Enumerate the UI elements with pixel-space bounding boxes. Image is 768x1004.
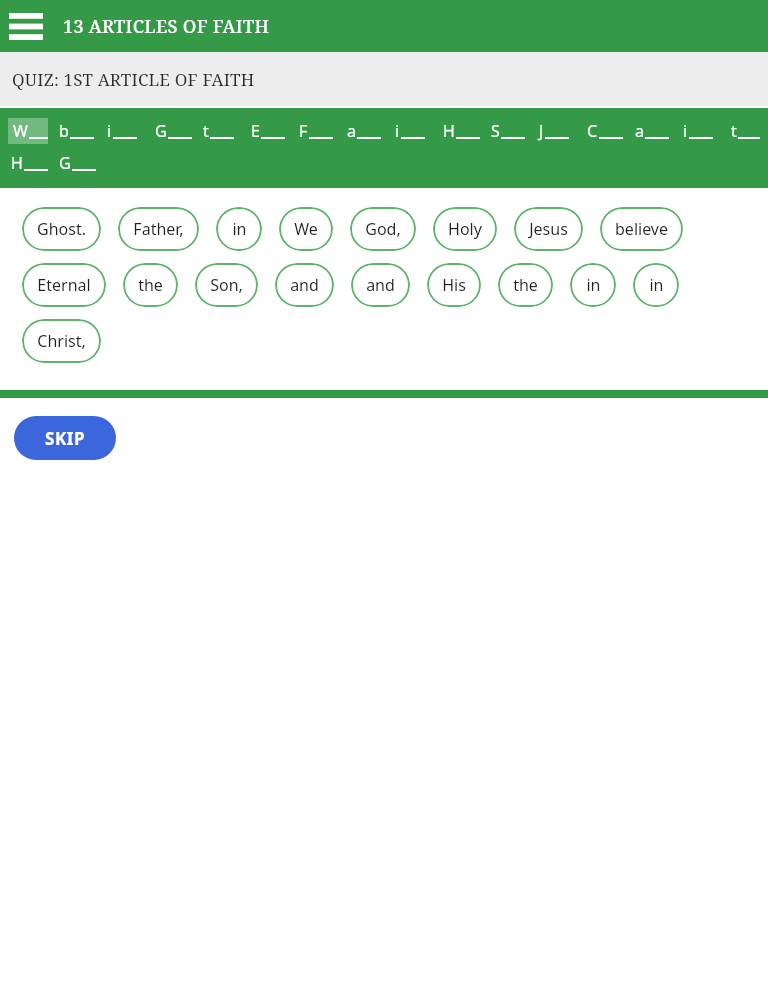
staticText: C xyxy=(587,120,598,142)
staticText: E xyxy=(251,120,260,142)
button[interactable]: i xyxy=(680,118,720,144)
staticText: Christ, xyxy=(37,330,86,352)
button[interactable]: E xyxy=(248,118,288,144)
staticText: H xyxy=(11,152,23,174)
button[interactable]: Father, xyxy=(118,207,199,251)
button[interactable]: the xyxy=(498,263,553,307)
button[interactable]: F xyxy=(296,118,336,144)
button[interactable]: We xyxy=(279,207,333,251)
button[interactable]: His xyxy=(427,263,481,307)
button[interactable]: J xyxy=(536,118,576,144)
staticText: J xyxy=(539,120,544,142)
staticText: H xyxy=(443,120,455,142)
button[interactable]: in xyxy=(633,263,679,307)
staticText: Holy xyxy=(448,218,482,240)
staticText: Jesus xyxy=(529,218,568,240)
staticText: G xyxy=(155,120,167,142)
button[interactable]: C xyxy=(584,118,624,144)
staticText: t xyxy=(203,120,209,142)
staticText: We xyxy=(294,218,318,240)
button[interactable]: i xyxy=(392,118,432,144)
staticText: Ghost. xyxy=(37,218,86,240)
button[interactable]: H xyxy=(440,118,480,144)
button[interactable]: Jesus xyxy=(514,207,583,251)
staticText: G xyxy=(59,152,71,174)
button[interactable]: SKIP xyxy=(14,416,116,460)
staticText: a xyxy=(347,120,356,142)
button[interactable]: S xyxy=(488,118,528,144)
staticText: F xyxy=(299,120,308,142)
button[interactable]: believe xyxy=(600,207,683,251)
button[interactable]: Christ, xyxy=(22,319,101,363)
staticText: and xyxy=(366,274,395,296)
staticText: a xyxy=(635,120,644,142)
staticText: i xyxy=(107,120,112,142)
staticText: t xyxy=(731,120,737,142)
staticText: QUIZ: 1ST ARTICLE OF FAITH xyxy=(12,68,255,91)
button[interactable]: b xyxy=(56,118,96,144)
button[interactable]: Ghost. xyxy=(22,207,101,251)
button[interactable]: Son, xyxy=(195,263,258,307)
staticText: S xyxy=(491,120,500,142)
staticText: i xyxy=(683,120,688,142)
staticText: in xyxy=(586,274,601,296)
button[interactable]: the xyxy=(123,263,178,307)
button[interactable]: Eternal xyxy=(22,263,106,307)
button[interactable]: G xyxy=(152,118,192,144)
button[interactable]: W xyxy=(8,118,48,144)
staticText: i xyxy=(395,120,400,142)
staticText: 13 ARTICLES OF FAITH xyxy=(63,14,270,39)
button[interactable]: and xyxy=(275,263,334,307)
button[interactable]: a xyxy=(632,118,672,144)
staticText: the xyxy=(138,274,163,296)
button[interactable]: and xyxy=(351,263,410,307)
staticText: the xyxy=(513,274,538,296)
staticText: Son, xyxy=(210,274,243,296)
button[interactable]: t xyxy=(200,118,240,144)
button[interactable]: in xyxy=(570,263,616,307)
button[interactable]: G xyxy=(56,150,96,176)
button[interactable]: Open navigation menu xyxy=(6,6,46,46)
staticText: b xyxy=(59,120,69,142)
staticText: His xyxy=(442,274,466,296)
button[interactable]: in xyxy=(216,207,262,251)
button[interactable]: H xyxy=(8,150,48,176)
button[interactable]: a xyxy=(344,118,384,144)
staticText: and xyxy=(290,274,319,296)
staticText: Father, xyxy=(133,218,184,240)
button[interactable]: t xyxy=(728,118,760,144)
staticText: Eternal xyxy=(37,274,91,296)
staticText: in xyxy=(232,218,247,240)
button[interactable]: God, xyxy=(350,207,416,251)
staticText: in xyxy=(649,274,664,296)
staticText: God, xyxy=(365,218,401,240)
staticText: W xyxy=(13,120,28,142)
button[interactable]: Holy xyxy=(433,207,497,251)
button[interactable]: i xyxy=(104,118,144,144)
staticText: believe xyxy=(615,218,668,240)
staticText: SKIP xyxy=(45,427,86,450)
